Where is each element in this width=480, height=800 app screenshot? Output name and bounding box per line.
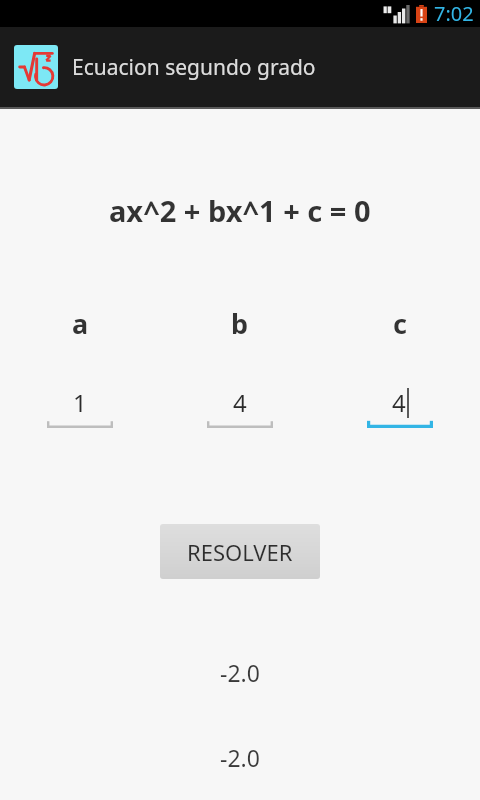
- staticText: b: [231, 305, 249, 342]
- staticText: 4: [233, 386, 247, 419]
- staticText: Ecuacion segundo grado: [72, 53, 316, 82]
- staticText: RESOLVER: [187, 537, 293, 567]
- button[interactable]: Coefficient input 4: [367, 385, 433, 428]
- staticText: 1: [73, 386, 87, 419]
- staticText: 7:02: [434, 0, 474, 27]
- button[interactable]: RESOLVER: [160, 524, 320, 579]
- button[interactable]: Coefficient input 1: [47, 385, 113, 428]
- staticText: ax^2 + bx^1 + c = 0: [109, 191, 371, 230]
- staticText: -2.0: [220, 657, 260, 688]
- button[interactable]: Coefficient input 4: [207, 385, 273, 428]
- staticText: c: [393, 305, 407, 342]
- staticText: -2.0: [220, 742, 260, 773]
- staticText: 4: [392, 386, 406, 419]
- staticText: a: [72, 305, 89, 342]
